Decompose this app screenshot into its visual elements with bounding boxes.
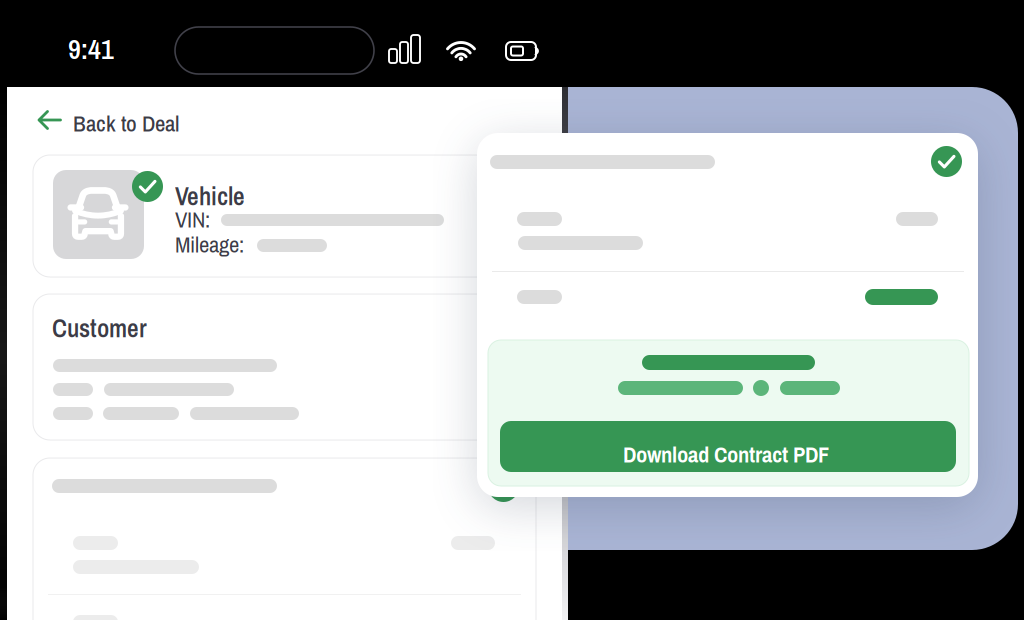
staticText: Download Contract PDF — [623, 439, 829, 469]
staticText: Customer — [52, 311, 147, 345]
staticText: Back to Deal — [73, 108, 179, 138]
button[interactable]: Customer — [33, 294, 536, 440]
button[interactable]: Vehicle — [33, 155, 536, 277]
button[interactable]: Download Contract PDF — [500, 421, 956, 472]
staticText: VIN: — [175, 204, 210, 234]
button[interactable] — [33, 458, 536, 620]
staticText: Vehicle — [175, 179, 245, 213]
staticText: 9:41 — [68, 30, 114, 68]
button[interactable]: Back to Deal — [7, 87, 207, 137]
staticText: Mileage: — [175, 229, 244, 259]
